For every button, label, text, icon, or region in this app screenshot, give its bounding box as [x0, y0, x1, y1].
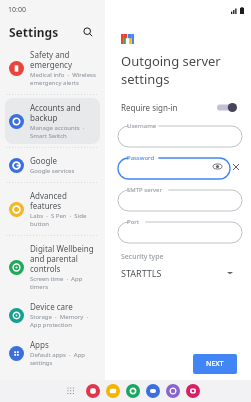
staticText: Labs · S Pen · Side button — [30, 212, 87, 228]
button[interactable]: Google — [5, 151, 100, 179]
button[interactable]: SMTP server — [118, 186, 242, 211]
staticText: Settings — [9, 24, 59, 40]
staticText: Username — [127, 122, 157, 130]
button[interactable]: Require sign-in — [105, 97, 251, 117]
staticText: SMTP server — [127, 186, 162, 194]
button[interactable]: Port — [118, 218, 242, 243]
button[interactable]: Device care — [5, 297, 100, 333]
button[interactable]: STARTTLS — [105, 266, 251, 280]
staticText: STARTTLS — [121, 267, 162, 279]
staticText: Outgoing server settings — [121, 52, 251, 88]
button[interactable]: ROUND_SQUARE — [86, 384, 100, 398]
staticText: Storage · Memory · App protection — [30, 313, 89, 329]
button[interactable]: Advanced features — [5, 186, 100, 232]
button[interactable]: PHONE — [126, 384, 140, 398]
button[interactable]: Apps — [5, 335, 100, 371]
staticText: Port — [127, 218, 139, 226]
staticText: Require sign-in — [121, 102, 178, 113]
button[interactable]: Clear — [230, 161, 242, 173]
button[interactable]: All apps — [64, 384, 78, 398]
staticText: Digital Wellbeing and parental controls — [30, 243, 94, 274]
staticText: NEXT — [206, 359, 224, 369]
button[interactable]: Search — [80, 24, 96, 40]
staticText: Advanced features — [30, 190, 96, 211]
staticText: Device care — [30, 301, 73, 312]
staticText: 10:00 — [8, 5, 26, 15]
staticText: Manage accounts · Smart Switch — [30, 124, 85, 140]
button[interactable]: CHAT — [166, 384, 180, 398]
staticText: Screen time · App timers — [30, 275, 83, 291]
button[interactable]: Accounts and backup — [5, 98, 100, 144]
button[interactable]: Digital Wellbeing and parental controls — [5, 239, 100, 295]
button[interactable]: MSG — [146, 384, 160, 398]
button[interactable]: FOLDER — [106, 384, 120, 398]
staticText: Google — [30, 155, 57, 166]
staticText: Default apps · App settings — [30, 351, 85, 367]
staticText: Medical info · Wireless emergency alerts — [30, 71, 96, 87]
staticText: Safety and emergency — [30, 49, 73, 70]
button[interactable]: Show password — [213, 162, 222, 171]
staticText: Security type — [121, 252, 164, 262]
button[interactable]: CAMERA — [186, 384, 200, 398]
button[interactable]: NEXT — [193, 354, 237, 374]
staticText: Google services — [30, 167, 75, 175]
button[interactable]: Safety and emergency — [5, 45, 100, 91]
staticText: Password — [127, 154, 155, 162]
staticText: Apps — [30, 339, 49, 350]
button[interactable]: Username — [118, 122, 242, 147]
staticText: Accounts and backup — [30, 102, 81, 123]
button[interactable]: Password — [118, 154, 230, 179]
